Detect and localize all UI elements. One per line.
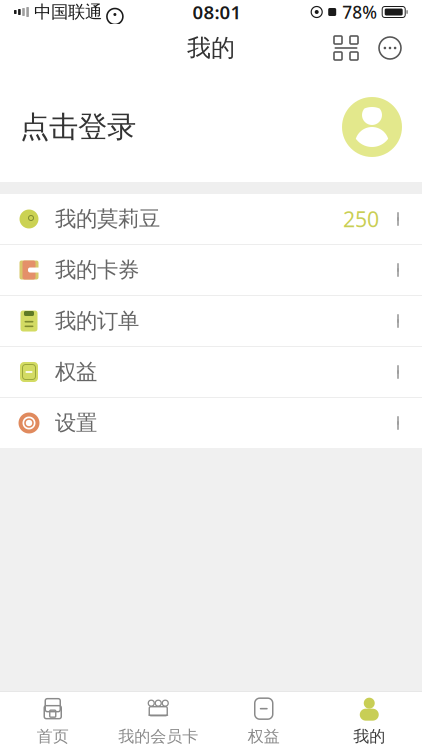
staticText: 权益	[248, 727, 280, 746]
staticText: 设置	[55, 410, 97, 436]
button[interactable]: 首页	[0, 692, 105, 750]
button[interactable]: 扫一扫	[324, 26, 368, 70]
staticText: 我的会员卡	[118, 727, 198, 746]
staticText: 点击登录	[20, 109, 136, 145]
staticText: 08:01	[192, 0, 241, 24]
button[interactable]: 点击登录	[0, 72, 422, 182]
staticText: 权益	[55, 359, 97, 385]
button[interactable]: 我的会员卡	[105, 692, 211, 750]
button[interactable]: 我的莫莉豆	[0, 194, 422, 244]
staticText: 我的卡券	[55, 257, 139, 283]
button[interactable]: 设置	[0, 398, 422, 448]
staticText: 中国联通	[34, 1, 102, 23]
staticText: 我的莫莉豆	[55, 206, 160, 232]
button[interactable]: 更多	[368, 26, 412, 70]
button[interactable]: 我的	[316, 692, 422, 750]
button[interactable]: 权益	[211, 692, 316, 750]
button[interactable]: 我的卡券	[0, 245, 422, 295]
button[interactable]: 我的订单	[0, 296, 422, 346]
staticText: 我的订单	[55, 308, 139, 334]
staticText: 我的	[353, 727, 385, 746]
staticText: 250	[343, 205, 379, 233]
staticText: 我的	[187, 33, 235, 63]
button[interactable]: 权益	[0, 347, 422, 397]
staticText: 78%	[342, 0, 377, 23]
staticText: 首页	[37, 727, 69, 746]
